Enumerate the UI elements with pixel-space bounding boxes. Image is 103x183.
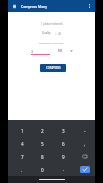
button[interactable]: 9	[53, 150, 74, 163]
staticText: -	[84, 128, 86, 134]
button[interactable]: MB	[58, 48, 73, 54]
button[interactable]: 3	[31, 48, 50, 54]
button[interactable]: ·	[53, 163, 74, 176]
button[interactable]: 2	[32, 124, 53, 137]
button[interactable]: More options	[83, 0, 95, 12]
button[interactable]: Menu	[8, 0, 20, 12]
staticText: 3	[31, 49, 34, 54]
button[interactable]: ,	[74, 137, 95, 150]
staticText: 1 picture selected	[41, 22, 63, 26]
button[interactable]: 0	[32, 163, 53, 176]
button[interactable]: 3	[53, 124, 74, 137]
staticText: ,	[84, 141, 86, 147]
staticText: ·	[63, 167, 65, 173]
button[interactable]: Quality	[42, 29, 61, 36]
staticText: 5	[41, 141, 44, 147]
staticText: 8	[41, 154, 44, 160]
staticText: 9	[62, 154, 65, 160]
button[interactable]: bksp	[74, 150, 95, 163]
button[interactable]: 5	[32, 137, 53, 150]
staticText: 2	[41, 128, 44, 134]
button[interactable]: -	[74, 124, 95, 137]
button[interactable]: .	[12, 163, 32, 176]
staticText: 7	[21, 154, 24, 160]
button[interactable]: 4	[12, 137, 32, 150]
staticText: COMPRESS	[46, 66, 61, 70]
staticText: 4	[21, 141, 24, 147]
staticText: Compress to the size	[39, 41, 64, 44]
staticText: 1	[21, 128, 24, 134]
staticText: 0	[41, 167, 44, 173]
button[interactable]: COMPRESS	[40, 64, 66, 72]
button[interactable]: enter	[74, 163, 95, 176]
staticText: 6	[62, 141, 65, 147]
staticText: Compress Many	[21, 4, 47, 9]
staticText: 3	[62, 128, 65, 134]
button[interactable]: 8	[32, 150, 53, 163]
staticText: .	[21, 167, 23, 173]
staticText: Quality	[42, 31, 51, 35]
button[interactable]: 1	[12, 124, 32, 137]
button[interactable]: 6	[53, 137, 74, 150]
staticText: MB	[58, 49, 63, 53]
button[interactable]: 7	[12, 150, 32, 163]
